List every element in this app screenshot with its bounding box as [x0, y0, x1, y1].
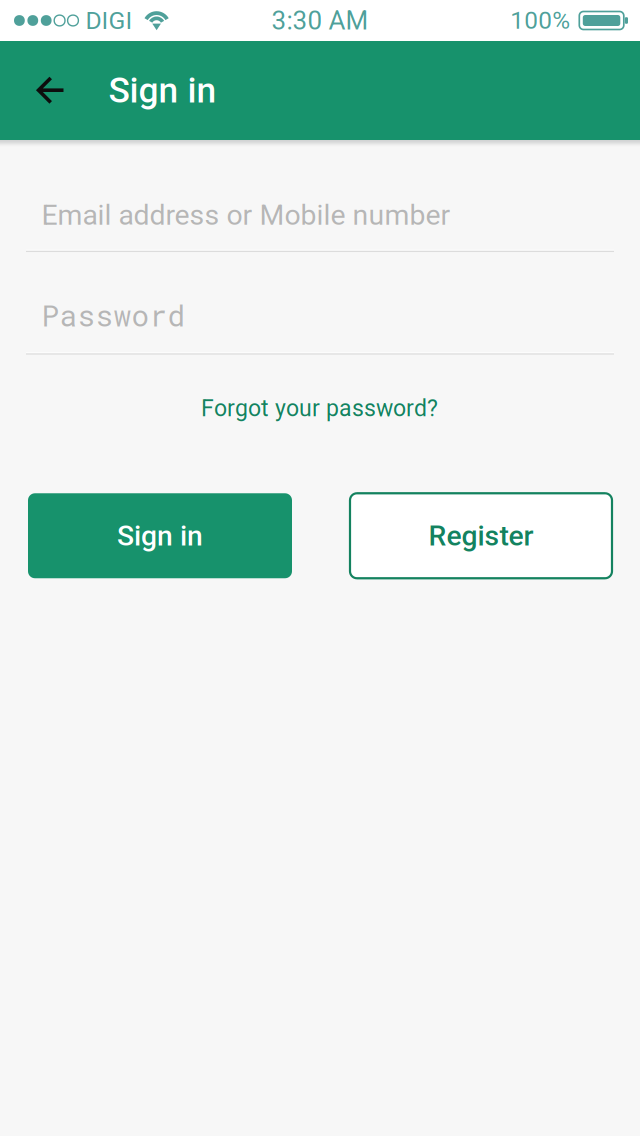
button[interactable]: Register [350, 493, 612, 578]
staticText: Email address or Mobile number [41, 198, 450, 232]
button[interactable]: Back [18, 40, 82, 140]
staticText: DIGI [85, 6, 132, 35]
button[interactable]: Sign in [28, 493, 292, 578]
staticText: Forgot your password? [201, 395, 438, 422]
staticText: Sign in [117, 519, 203, 552]
staticText: 3:30 AM [271, 5, 368, 36]
staticText: Password [41, 296, 185, 334]
button[interactable]: Forgot your password? [26, 386, 613, 430]
staticText: Register [428, 519, 533, 552]
staticText: 100% [510, 6, 570, 35]
staticText: Sign in [108, 70, 216, 111]
